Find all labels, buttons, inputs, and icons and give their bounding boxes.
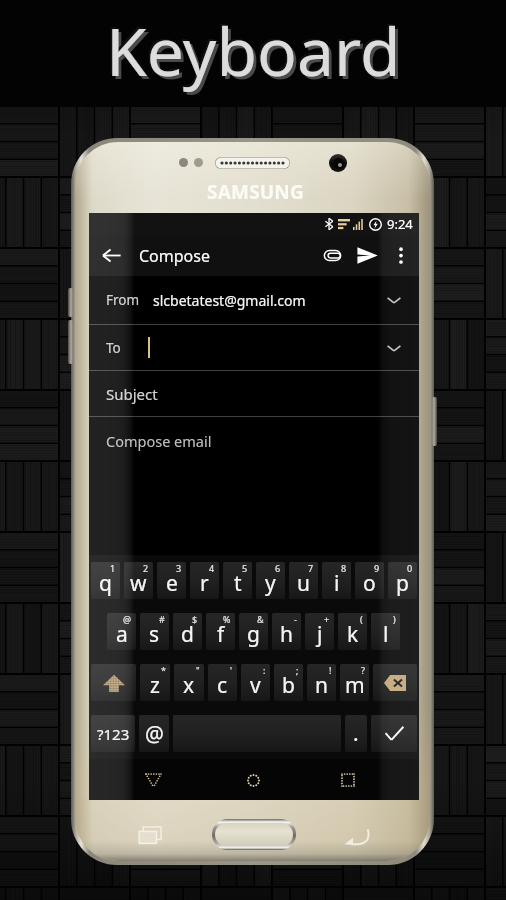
button[interactable]: Recents [330, 762, 366, 798]
staticText: # [159, 613, 165, 625]
button[interactable]: p [388, 562, 417, 599]
staticText: @ [145, 720, 164, 749]
staticText: d [181, 620, 194, 649]
staticText: t [234, 569, 242, 598]
staticText: ! [329, 664, 332, 676]
staticText: f [217, 620, 225, 649]
staticText: 6 [275, 562, 281, 574]
staticText: ( [360, 613, 363, 625]
staticText: 0 [407, 562, 413, 574]
staticText: Keyboard [109, 8, 404, 98]
button[interactable]: f [206, 613, 235, 650]
staticText: l [383, 620, 389, 649]
staticText: e [166, 569, 178, 598]
button[interactable]: @ [139, 715, 169, 752]
button[interactable]: x [174, 664, 204, 701]
staticText: % [223, 613, 231, 625]
button[interactable]: Shift [91, 664, 136, 701]
button[interactable]: q [91, 562, 120, 599]
button[interactable]: g [239, 613, 268, 650]
staticText: & [257, 613, 264, 625]
button[interactable]: Volume up [68, 288, 73, 317]
button[interactable]: b [274, 664, 303, 701]
staticText: " [196, 664, 200, 676]
button[interactable]: Compose email [106, 431, 419, 555]
staticText: c [217, 671, 228, 700]
staticText: @ [123, 613, 132, 625]
staticText: 2 [143, 562, 149, 574]
staticText: j [317, 620, 323, 649]
button[interactable]: Backspace [373, 664, 417, 701]
staticText: i [334, 569, 340, 598]
staticText: w [130, 569, 147, 598]
button[interactable]: t [223, 562, 252, 599]
button[interactable]: Subject [106, 371, 419, 416]
button[interactable]: Power [432, 397, 437, 446]
button[interactable]: ?123 [91, 715, 135, 752]
button[interactable]: More options [382, 235, 419, 276]
button[interactable]: c [208, 664, 237, 701]
staticText: . [353, 719, 359, 748]
staticText: y [265, 569, 276, 598]
button[interactable]: Back [342, 825, 370, 849]
staticText: o [363, 569, 376, 598]
staticText: u [297, 569, 310, 598]
staticText: 7 [308, 562, 314, 574]
button[interactable]: a [107, 613, 136, 650]
button[interactable]: o [355, 562, 384, 599]
button[interactable]: y [256, 562, 285, 599]
button[interactable]: r [190, 562, 219, 599]
staticText: - [294, 613, 297, 625]
staticText: ? [361, 664, 365, 676]
button[interactable]: e [157, 562, 186, 599]
button[interactable]: Home [212, 819, 296, 850]
button[interactable]: Volume down [68, 320, 73, 364]
button[interactable]: . [345, 715, 367, 752]
button[interactable]: m [340, 664, 369, 701]
staticText: h [280, 620, 293, 649]
button[interactable]: Home [235, 762, 271, 798]
staticText: 8 [341, 562, 347, 574]
button[interactable]: j [305, 613, 334, 650]
staticText: 1 [110, 562, 116, 574]
staticText: g [247, 620, 260, 649]
button[interactable]: l [371, 613, 400, 650]
button[interactable]: From [89, 276, 419, 324]
button[interactable]: i [322, 562, 351, 599]
staticText: a [116, 620, 128, 649]
button[interactable]: Send [345, 235, 382, 276]
button[interactable]: d [173, 613, 202, 650]
staticText: slcbetatest@gmail.com [153, 291, 306, 310]
staticText: v [250, 671, 261, 700]
staticText: ; [296, 664, 299, 676]
staticText: z [150, 671, 160, 700]
staticText: ?123 [97, 724, 130, 744]
staticText: * [161, 664, 166, 676]
button[interactable]: To [89, 325, 419, 370]
button[interactable]: h [272, 613, 301, 650]
button[interactable]: Attach file [309, 235, 345, 276]
button[interactable]: Hide keyboard [135, 762, 171, 798]
staticText: : [263, 664, 266, 676]
button[interactable]: k [338, 613, 367, 650]
button[interactable]: n [307, 664, 336, 701]
staticText: n [315, 671, 328, 700]
staticText: 5 [242, 562, 248, 574]
staticText: ) [393, 613, 396, 625]
button[interactable]: Navigate up [89, 235, 133, 276]
staticText: 9 [374, 562, 380, 574]
button[interactable]: w [124, 562, 153, 599]
button[interactable]: z [140, 664, 170, 701]
staticText: To [106, 339, 121, 357]
staticText: ' [230, 664, 233, 676]
staticText: Keyboard [104, 3, 399, 93]
staticText: p [396, 569, 409, 598]
button[interactable]: u [289, 562, 318, 599]
staticText: SAMSUNG [207, 179, 304, 205]
button[interactable]: v [241, 664, 270, 701]
staticText: $ [192, 613, 198, 625]
button[interactable]: Space [173, 715, 341, 752]
button[interactable]: s [140, 613, 169, 650]
button[interactable]: Enter [371, 715, 417, 752]
button[interactable]: Recent apps [136, 823, 164, 847]
